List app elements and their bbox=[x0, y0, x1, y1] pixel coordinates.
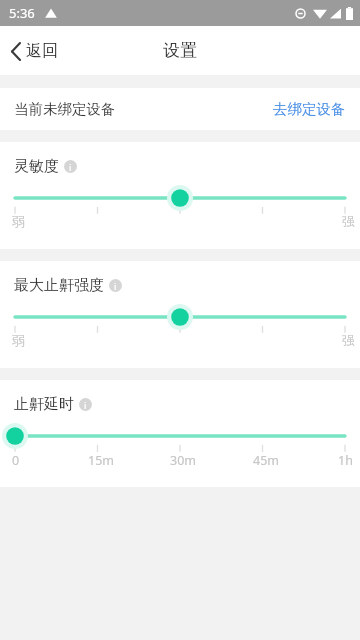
staticText: 弱 bbox=[12, 214, 25, 230]
staticText: 0 bbox=[12, 452, 20, 469]
staticText: i bbox=[84, 399, 87, 411]
button[interactable]: 滑块 bbox=[0, 424, 360, 452]
staticText: 弱 bbox=[12, 333, 25, 349]
button[interactable]: 返回 bbox=[0, 33, 70, 69]
button[interactable]: 说明 bbox=[109, 279, 122, 292]
staticText: 强 bbox=[342, 214, 355, 230]
button[interactable]: 滑块 bbox=[0, 186, 360, 214]
staticText: 返回 bbox=[26, 41, 58, 61]
staticText: 1h bbox=[338, 452, 353, 469]
staticText: 当前未绑定设备 bbox=[14, 100, 116, 118]
staticText: 灵敏度 bbox=[14, 157, 59, 176]
staticText: 15m bbox=[88, 452, 114, 469]
button[interactable]: 当前未绑定设备 bbox=[0, 88, 360, 130]
button[interactable]: 说明 bbox=[64, 160, 77, 173]
staticText: i bbox=[114, 280, 117, 292]
staticText: 强 bbox=[342, 333, 355, 349]
staticText: i bbox=[69, 161, 72, 173]
button[interactable]: 说明 bbox=[79, 398, 92, 411]
staticText: 设置 bbox=[163, 40, 197, 61]
staticText: 45m bbox=[253, 452, 279, 469]
staticText: 去绑定设备 bbox=[273, 100, 346, 118]
staticText: 30m bbox=[170, 452, 196, 469]
staticText: 止鼾延时 bbox=[14, 395, 74, 414]
staticText: 5:36 bbox=[9, 4, 35, 22]
staticText: 最大止鼾强度 bbox=[14, 276, 104, 295]
button[interactable]: 滑块 bbox=[0, 305, 360, 333]
